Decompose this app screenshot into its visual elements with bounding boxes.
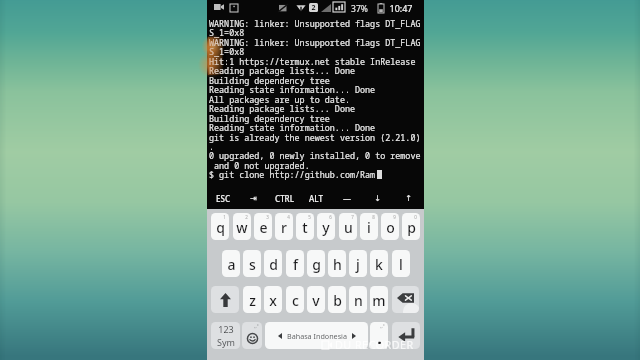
button[interactable]: — [331,187,362,209]
staticText: b [333,291,342,310]
staticText: Bahasa Indonesia [287,331,347,341]
button[interactable]: v [307,286,325,313]
staticText: S_1=0x8 [209,27,245,38]
button[interactable]: d [264,250,282,277]
button[interactable]: ⇥ [238,187,269,209]
button[interactable]: 123 [211,322,240,349]
staticText: w [236,218,248,237]
staticText: s [249,255,256,274]
staticText: 9 [393,214,396,220]
staticText: Building dependency tree [209,113,330,124]
staticText: — [343,193,351,204]
staticText: g [312,255,321,274]
staticText: 2 [311,3,316,12]
staticText: 5 [308,214,311,220]
staticText: Reading state information... Done [209,122,376,133]
staticText: v [312,291,320,310]
staticText: 123 [218,323,234,335]
staticText: y [322,218,330,237]
button[interactable]: f [286,250,304,277]
button[interactable]: Shift [211,286,239,313]
staticText: e [259,218,268,237]
button[interactable]: y [317,213,335,240]
staticText: ↑ [405,194,412,203]
button[interactable]: x [264,286,282,313]
staticText: and 0 not upgraded. [209,160,310,171]
staticText: WARNING: linker: Unsupported flags DT_FL… [209,37,421,48]
staticText: ESC [216,193,230,204]
staticText: x [269,291,277,310]
staticText: u [344,218,353,237]
button[interactable]: q [211,213,229,240]
button[interactable]: e [254,213,272,240]
staticText: 10:47 [389,2,413,14]
staticText: 1 [223,214,226,220]
button[interactable]: Backspace [392,286,419,313]
staticText: q [216,218,225,237]
staticText: 8 [372,214,375,220]
staticText: 3 [266,214,269,220]
staticText: ⇥ [250,194,257,203]
button[interactable]: ALT [300,187,331,209]
staticText: Reading package lists... Done [209,103,355,114]
staticText: a [227,255,236,274]
staticText: 37% [351,3,368,15]
staticText: DU RECORDER [335,337,414,352]
staticText: All packages are up to date. [209,94,350,105]
staticText: S_1=0x8 [209,46,245,57]
button[interactable]: j [349,250,367,277]
staticText: p [407,218,416,237]
button[interactable]: a [222,250,240,277]
button[interactable]: ,,° [370,322,388,349]
staticText: WARNING: linker: Unsupported flags DT_FL… [209,18,421,29]
button[interactable]: o [381,213,399,240]
button[interactable]: l [392,250,410,277]
button[interactable]: m [370,286,388,313]
staticText: t [302,218,308,237]
button[interactable]: t [296,213,314,240]
staticText: 6 [329,214,332,220]
button[interactable]: z [243,286,261,313]
staticText: 7 [351,214,354,220]
staticText: 0 [414,214,417,220]
staticText: f [293,255,298,274]
button[interactable]: ↑ [393,187,424,209]
staticText: i [367,218,371,237]
button[interactable]: u [339,213,357,240]
button[interactable]: p [402,213,420,240]
staticText: CTRL [275,193,294,204]
staticText: k [375,255,383,274]
staticText: 2 [245,214,248,220]
button[interactable]: g [307,250,325,277]
button[interactable]: b [328,286,346,313]
staticText: Sym [217,336,235,348]
staticText: 4 [287,214,290,220]
button[interactable]: Emoji [242,322,262,349]
button[interactable]: ESC [207,187,238,209]
button[interactable]: CTRL [269,187,300,209]
button[interactable]: h [328,250,346,277]
button[interactable]: s [243,250,261,277]
staticText: o [386,218,395,237]
staticText: Hit:1 https://termux.net stable InReleas… [209,56,416,67]
staticText: ALT [309,193,323,204]
button[interactable]: w [233,213,251,240]
button[interactable]: c [286,286,304,313]
staticText: z [249,291,256,310]
button[interactable]: k [370,250,388,277]
staticText: c [292,291,299,310]
button[interactable]: i [360,213,378,240]
staticText: l [399,255,403,274]
staticText: ,,° [380,323,385,329]
staticText: . [209,141,215,152]
button[interactable]: n [349,286,367,313]
button[interactable]: ↓ [362,187,393,209]
staticText: n [354,291,363,310]
staticText: h [333,255,342,274]
staticText: r [281,218,287,237]
button[interactable]: Enter [392,322,420,349]
staticText: $ git clone http://github.com/Ram [209,169,376,180]
staticText: ,,° [254,323,259,329]
button[interactable]: r [275,213,293,240]
button[interactable]: Bahasa Indonesia [265,322,368,349]
